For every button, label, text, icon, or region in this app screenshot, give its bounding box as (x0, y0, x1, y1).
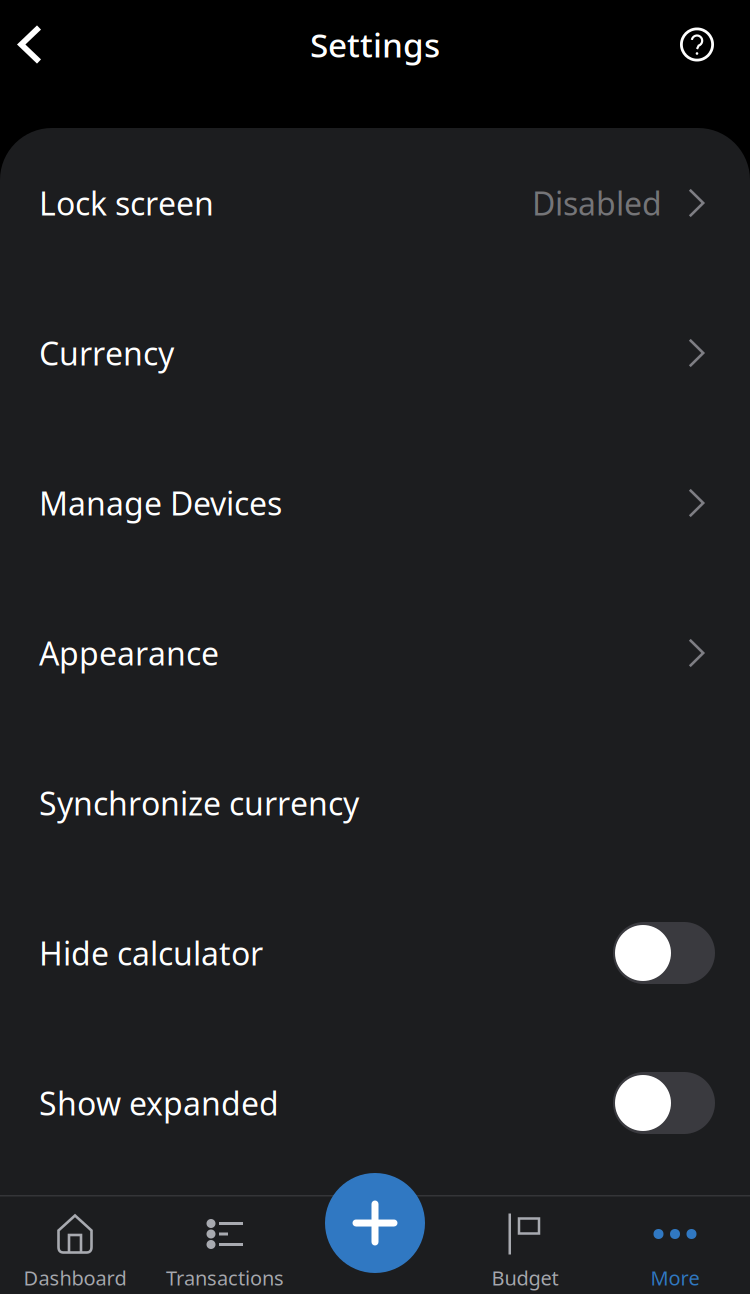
staticText: Appearance (39, 632, 219, 674)
staticText: Settings (310, 22, 440, 67)
button[interactable]: Lock screen (0, 128, 750, 278)
button[interactable]: Show expanded (0, 1028, 750, 1178)
staticText: Synchronize currency (39, 782, 359, 824)
staticText: Dashboard (23, 1264, 126, 1291)
staticText: Show expanded (39, 1082, 279, 1124)
button[interactable]: Synchronize currency (0, 728, 750, 878)
button[interactable]: More (600, 1195, 750, 1294)
staticText: Lock screen (39, 182, 214, 224)
button[interactable]: Help (663, 11, 750, 77)
staticText: More (650, 1264, 699, 1291)
staticText: Hide calculator (39, 932, 263, 974)
button[interactable]: Manage Devices (0, 428, 750, 578)
button[interactable]: Back (0, 9, 58, 79)
staticText: Budget (491, 1264, 558, 1291)
staticText: Currency (39, 332, 174, 374)
button[interactable]: Budget (450, 1195, 600, 1294)
staticText: Transactions (166, 1264, 284, 1291)
button[interactable]: Dashboard (0, 1195, 150, 1294)
button[interactable]: Hide calculator (0, 878, 750, 1028)
button[interactable]: Appearance (0, 578, 750, 728)
button[interactable]: Currency (0, 278, 750, 428)
button[interactable]: Transactions (150, 1195, 300, 1294)
staticText: Manage Devices (39, 482, 282, 524)
button[interactable]: Add (325, 1173, 425, 1273)
staticText: Disabled (532, 182, 662, 224)
